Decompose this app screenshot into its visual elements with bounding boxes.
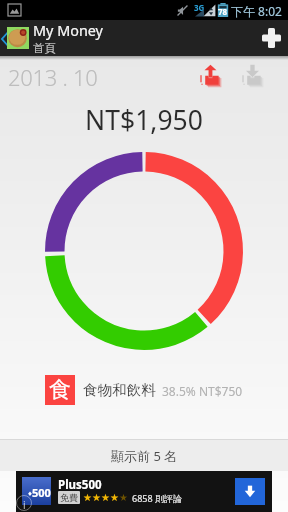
staticText: NT$1,950: [0, 102, 288, 138]
staticText: 顯示前 5 名: [111, 447, 178, 465]
button[interactable]: 500: [16, 471, 272, 512]
staticText: ★★★★: [83, 492, 119, 504]
staticText: 500: [32, 485, 51, 500]
button[interactable]: Import: [240, 63, 264, 86]
staticText: 食物和飲料: [83, 381, 156, 399]
staticText: My Money: [33, 21, 103, 41]
staticText: 78: [218, 6, 228, 17]
staticText: 3G: [194, 2, 205, 13]
staticText: Plus500: [58, 477, 102, 493]
staticText: ★: [119, 492, 128, 504]
button[interactable]: Add: [252, 20, 288, 56]
staticText: 6858 則評論: [132, 492, 182, 504]
staticText: 食: [49, 376, 71, 404]
button[interactable]: Export: [198, 63, 222, 86]
staticText: 首頁: [33, 41, 56, 55]
staticText: 下午 8:02: [231, 3, 282, 19]
button[interactable]: Download: [235, 478, 265, 505]
staticText: 免費: [60, 492, 78, 503]
staticText: 2013 . 10: [8, 62, 98, 92]
staticText: i: [23, 497, 26, 512]
button[interactable]: 顯示前 5 名: [0, 440, 288, 471]
staticText: 38.5% NT$750: [162, 383, 243, 399]
